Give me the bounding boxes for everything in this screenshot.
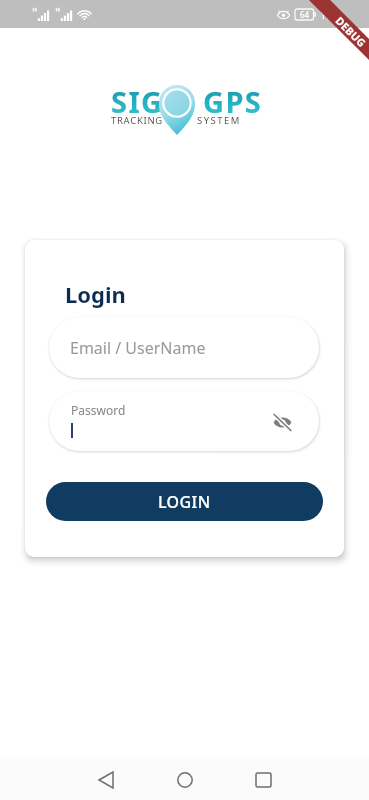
button[interactable]: Recents xyxy=(245,762,281,798)
staticText: DEBUG xyxy=(333,14,369,51)
staticText: 64 xyxy=(300,9,310,20)
button[interactable]: Back xyxy=(88,762,124,798)
button[interactable]: Home xyxy=(167,762,203,798)
staticText: Login xyxy=(65,279,126,309)
staticText: 1:58 xyxy=(320,7,342,22)
staticText: LOGIN xyxy=(158,491,211,513)
button[interactable]: Password xyxy=(49,391,319,451)
staticText: SYSTEM xyxy=(197,114,241,127)
staticText: TRACKING xyxy=(111,114,163,127)
staticText: Email / UserName xyxy=(70,337,206,359)
button[interactable]: Email / UserName xyxy=(49,317,319,378)
button[interactable]: LOGIN xyxy=(46,482,323,521)
staticText: Password xyxy=(71,402,126,418)
staticText: GPS xyxy=(203,82,263,121)
staticText: SIG xyxy=(111,82,164,121)
button[interactable]: Show password xyxy=(269,412,295,432)
